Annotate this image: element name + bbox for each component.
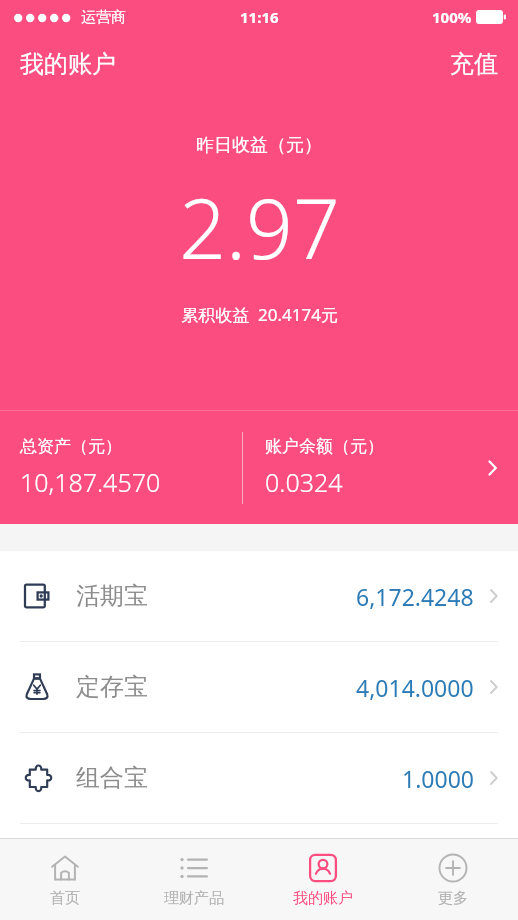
button[interactable]: 活期宝: [0, 551, 518, 641]
staticText: 昨日收益（元）: [196, 134, 322, 157]
staticText: 6,172.4248: [356, 581, 474, 612]
staticText: 组合宝: [76, 763, 148, 793]
button[interactable]: 首页: [0, 839, 129, 920]
staticText: 累积收益 20.4174元: [181, 303, 338, 326]
staticText: 定存宝: [76, 672, 148, 702]
staticText: 运营商: [81, 8, 126, 27]
staticText: 总资产（元）: [20, 436, 122, 457]
staticText: 0.0324: [265, 465, 343, 499]
staticText: 活期宝: [76, 581, 148, 611]
staticText: 1.0000: [402, 763, 474, 794]
staticText: 我的账户: [293, 889, 353, 908]
staticText: 100%: [432, 7, 472, 27]
staticText: 充值: [450, 49, 498, 79]
button[interactable]: 充值: [430, 41, 518, 87]
staticText: 首页: [50, 889, 80, 908]
button[interactable]: 组合宝: [0, 733, 518, 823]
staticText: 2.97: [179, 171, 340, 283]
button[interactable]: 定存宝: [0, 642, 518, 732]
staticText: 账户余额（元）: [265, 436, 384, 457]
button[interactable]: 我的账户: [258, 839, 388, 920]
button[interactable]: 理财产品: [129, 839, 258, 920]
staticText: 我的账户: [20, 49, 116, 79]
staticText: 10,187.4570: [20, 465, 161, 499]
staticText: 理财产品: [164, 889, 224, 908]
button[interactable]: 更多: [388, 839, 518, 920]
staticText: 更多: [438, 889, 468, 908]
staticText: 11:16: [240, 7, 279, 27]
staticText: 4,014.0000: [356, 672, 474, 703]
button[interactable]: 总资产（元）: [0, 411, 518, 524]
